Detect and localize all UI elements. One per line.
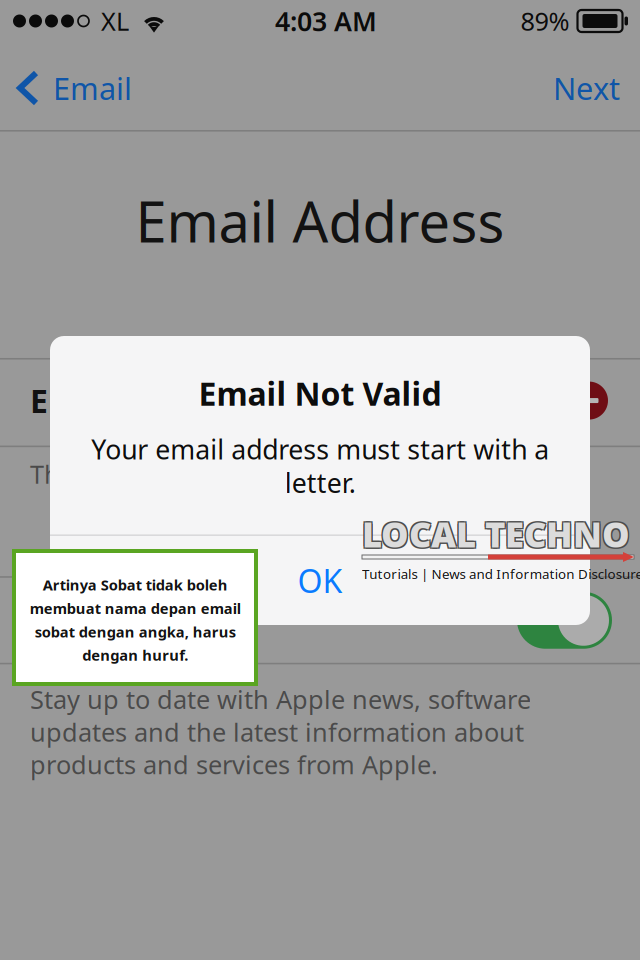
staticText: LOCAL TECHNO — [361, 512, 629, 558]
staticText: LOCAL TECHNO — [363, 512, 631, 558]
staticText: Email — [53, 68, 132, 108]
staticText: 4:03 AM — [275, 3, 377, 39]
button[interactable]: Next — [535, 58, 640, 130]
button[interactable]: OK — [50, 536, 590, 625]
staticText: LOCAL TECHNO — [361, 510, 629, 556]
button[interactable]: Apple News notifications — [517, 592, 612, 649]
staticText: Next — [553, 68, 620, 108]
staticText: Artinya Sobat tidak boleh membuat nama d… — [29, 575, 240, 665]
staticText: Apple News — [30, 600, 200, 641]
staticText: XL — [101, 4, 129, 38]
staticText: OK — [297, 559, 342, 602]
button[interactable]: Email — [0, 58, 146, 130]
staticText: Email Not Valid — [198, 372, 441, 414]
staticText: LOCAL TECHNO — [362, 511, 630, 557]
staticText: Your email address must start with a let… — [91, 431, 549, 500]
staticText: LOCAL TECHNO — [363, 510, 631, 556]
staticText: The latest Apple news, direct to your in… — [30, 457, 546, 491]
staticText: Stay up to date with Apple news, softwar… — [30, 682, 531, 781]
staticText: Tutorials | News and Information Disclos… — [362, 565, 640, 583]
staticText: Email Address — [135, 184, 504, 258]
staticText: Email Notifications — [30, 379, 335, 422]
staticText: 89% — [520, 4, 569, 38]
